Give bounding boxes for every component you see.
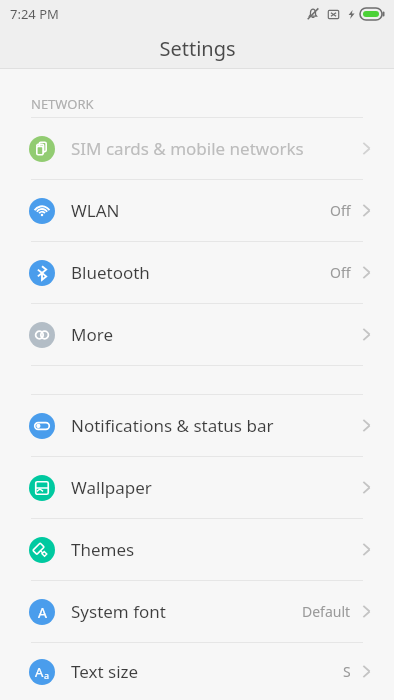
- button[interactable]: Bluetooth: [0, 242, 394, 303]
- staticText: SIM cards & mobile networks: [71, 137, 362, 160]
- staticText: NETWORK: [31, 95, 94, 113]
- staticText: Notifications & status bar: [71, 414, 362, 437]
- staticText: Off: [330, 201, 351, 220]
- staticText: WLAN: [71, 199, 330, 222]
- staticText: Default: [302, 602, 351, 621]
- staticText: System font: [71, 600, 302, 623]
- staticText: More: [71, 323, 362, 346]
- staticText: Text size: [71, 660, 343, 683]
- staticText: Bluetooth: [71, 261, 330, 284]
- staticText: Wallpaper: [71, 476, 362, 499]
- button[interactable]: Notifications & status bar: [0, 395, 394, 456]
- staticText: S: [343, 662, 351, 681]
- button[interactable]: SIM cards & mobile networks: [0, 118, 394, 179]
- staticText: 7:24 PM: [10, 5, 59, 23]
- button[interactable]: Wallpaper: [0, 457, 394, 518]
- button[interactable]: Themes: [0, 519, 394, 580]
- button[interactable]: A: [0, 643, 394, 700]
- staticText: A: [38, 603, 47, 622]
- staticText: A: [35, 663, 44, 681]
- staticText: Settings: [159, 35, 236, 62]
- staticText: Themes: [71, 538, 362, 561]
- button[interactable]: More: [0, 304, 394, 365]
- button[interactable]: A: [0, 581, 394, 642]
- staticText: a: [44, 669, 50, 681]
- staticText: Off: [330, 263, 351, 282]
- button[interactable]: WLAN: [0, 180, 394, 241]
